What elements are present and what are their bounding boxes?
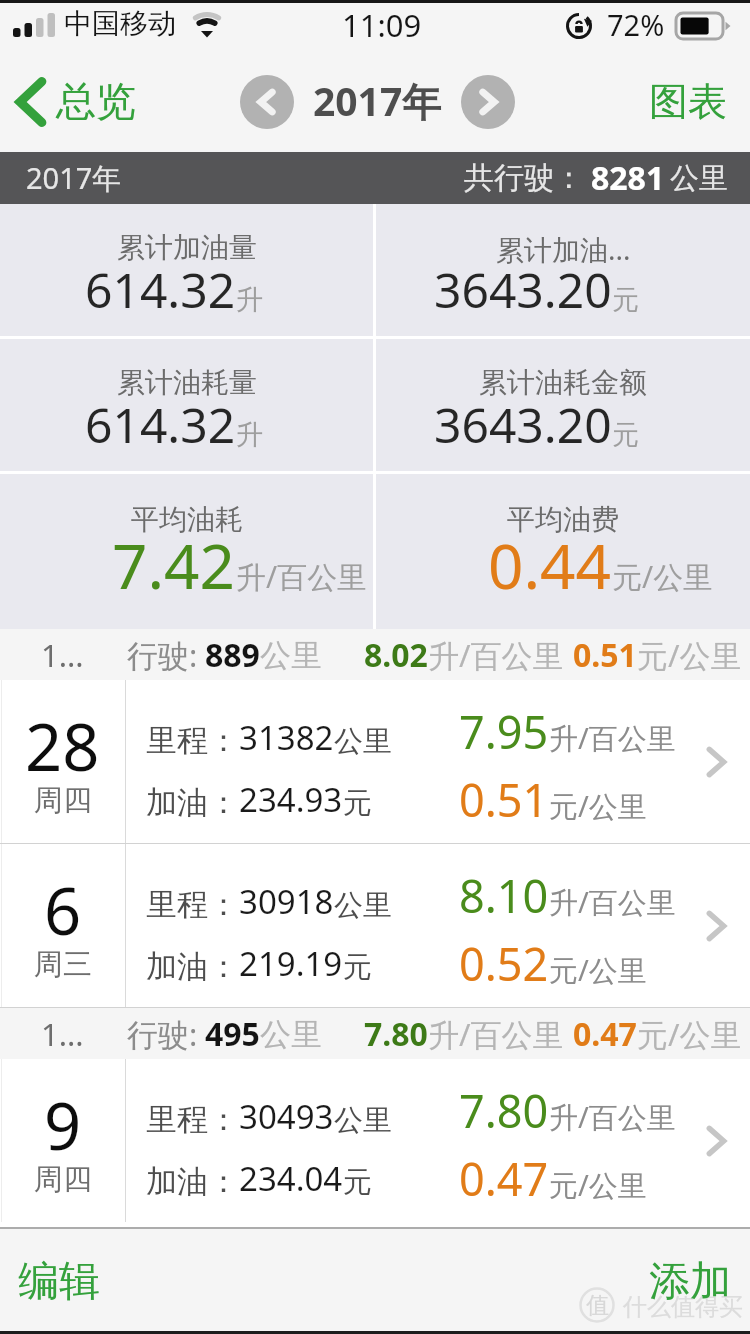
- staticText: 什么值得买: [623, 1292, 743, 1322]
- button[interactable]: 28: [0, 680, 750, 844]
- staticText: 升/百公里: [428, 634, 564, 676]
- staticText: 升: [236, 418, 263, 452]
- staticText: 元/公里: [612, 556, 714, 597]
- other: Open entry: [706, 905, 728, 947]
- staticText: 0.44: [488, 523, 612, 607]
- staticText: 234.93: [239, 777, 343, 822]
- staticText: 平均油耗: [131, 502, 243, 537]
- staticText: 添加: [649, 1256, 731, 1308]
- staticText: 31382: [239, 715, 334, 760]
- staticText: 元/公里: [549, 950, 647, 990]
- staticText: 加油：: [146, 1162, 239, 1201]
- button[interactable]: 累计加油...: [376, 204, 750, 336]
- staticText: 周四: [34, 782, 92, 819]
- button[interactable]: 累计油耗量: [0, 339, 373, 471]
- staticText: 6: [44, 866, 82, 955]
- staticText: 累计加油...: [496, 230, 631, 268]
- staticText: 公里: [334, 1102, 392, 1139]
- staticText: 中国移动: [64, 6, 176, 41]
- button[interactable]: 平均油费: [376, 474, 750, 629]
- staticText: 公里: [670, 160, 728, 197]
- staticText: 7.80: [364, 1012, 428, 1056]
- staticText: 3643.20: [434, 257, 612, 322]
- button[interactable]: 1...: [0, 629, 750, 680]
- staticText: 8281: [591, 156, 665, 200]
- staticText: 周三: [34, 946, 92, 983]
- staticText: 编辑: [18, 1256, 100, 1308]
- staticText: 行驶:: [127, 634, 198, 676]
- staticText: 7.95: [459, 701, 549, 762]
- staticText: 里程：: [146, 885, 239, 924]
- staticText: 加油：: [146, 783, 239, 822]
- staticText: 里程：: [146, 721, 239, 760]
- staticText: 元/公里: [637, 1013, 742, 1055]
- staticText: 元: [343, 785, 372, 822]
- staticText: 值: [586, 1291, 609, 1320]
- staticText: 累计加油量: [117, 230, 257, 265]
- button[interactable]: 9: [0, 1059, 750, 1222]
- button[interactable]: Next year: [461, 75, 515, 129]
- staticText: 7.80: [459, 1080, 549, 1141]
- button[interactable]: 总览: [6, 52, 148, 152]
- staticText: 升/百公里: [428, 1013, 564, 1055]
- staticText: 元: [343, 949, 372, 986]
- staticText: 234.04: [239, 1156, 343, 1201]
- button[interactable]: 累计加油量: [0, 204, 373, 336]
- button[interactable]: 图表: [627, 52, 750, 152]
- staticText: 1...: [41, 634, 84, 676]
- staticText: 平均油费: [507, 502, 619, 537]
- staticText: 升: [236, 283, 263, 317]
- button[interactable]: Previous year: [240, 75, 294, 129]
- staticText: 219.19: [239, 941, 343, 986]
- staticText: 里程：: [146, 1100, 239, 1139]
- button[interactable]: 平均油耗: [0, 474, 373, 629]
- staticText: 614.32: [85, 257, 236, 322]
- staticText: 0.51: [573, 633, 637, 677]
- staticText: 1...: [41, 1013, 84, 1055]
- other: Open entry: [706, 741, 728, 783]
- staticText: 行驶:: [127, 1013, 198, 1055]
- staticText: 2017年: [313, 74, 442, 127]
- staticText: 72%: [607, 5, 665, 44]
- staticText: 8.02: [364, 633, 428, 677]
- staticText: 共行驶：: [464, 159, 584, 197]
- staticText: 周四: [34, 1161, 92, 1198]
- staticText: 2017年: [26, 158, 122, 198]
- staticText: 元/公里: [549, 1165, 647, 1205]
- staticText: 28: [25, 702, 100, 791]
- staticText: 8.10: [459, 865, 549, 926]
- staticText: 495: [205, 1012, 260, 1056]
- staticText: 元/公里: [549, 786, 647, 826]
- staticText: 0.51: [459, 769, 549, 830]
- staticText: 公里: [260, 636, 322, 675]
- button[interactable]: 编辑: [0, 1229, 118, 1334]
- button[interactable]: 6: [0, 844, 750, 1008]
- staticText: 元: [612, 418, 639, 452]
- staticText: 9: [44, 1081, 82, 1170]
- staticText: 升/百公里: [549, 718, 676, 758]
- staticText: 0.47: [459, 1148, 549, 1209]
- staticText: 公里: [334, 887, 392, 924]
- staticText: 30493: [239, 1094, 334, 1139]
- button[interactable]: 累计油耗金额: [376, 339, 750, 471]
- staticText: 614.32: [85, 392, 236, 457]
- button[interactable]: 1...: [0, 1008, 750, 1059]
- staticText: 累计油耗量: [117, 365, 257, 400]
- button[interactable]: 添加: [627, 1229, 750, 1334]
- staticText: 升/百公里: [549, 882, 676, 922]
- staticText: 图表: [649, 77, 727, 126]
- staticText: 11:09: [342, 4, 422, 46]
- staticText: 30918: [239, 879, 334, 924]
- staticText: 889: [205, 633, 260, 677]
- staticText: 7.42: [112, 523, 236, 607]
- staticText: 3643.20: [434, 392, 612, 457]
- staticText: 元: [343, 1164, 372, 1201]
- staticText: 0.52: [459, 933, 549, 994]
- staticText: 总览: [56, 76, 136, 126]
- staticText: 元/公里: [637, 634, 742, 676]
- staticText: 升/百公里: [549, 1097, 676, 1137]
- staticText: 0.47: [573, 1012, 637, 1056]
- staticText: 升/百公里: [236, 556, 368, 597]
- other: Open entry: [706, 1120, 728, 1162]
- staticText: 公里: [334, 723, 392, 760]
